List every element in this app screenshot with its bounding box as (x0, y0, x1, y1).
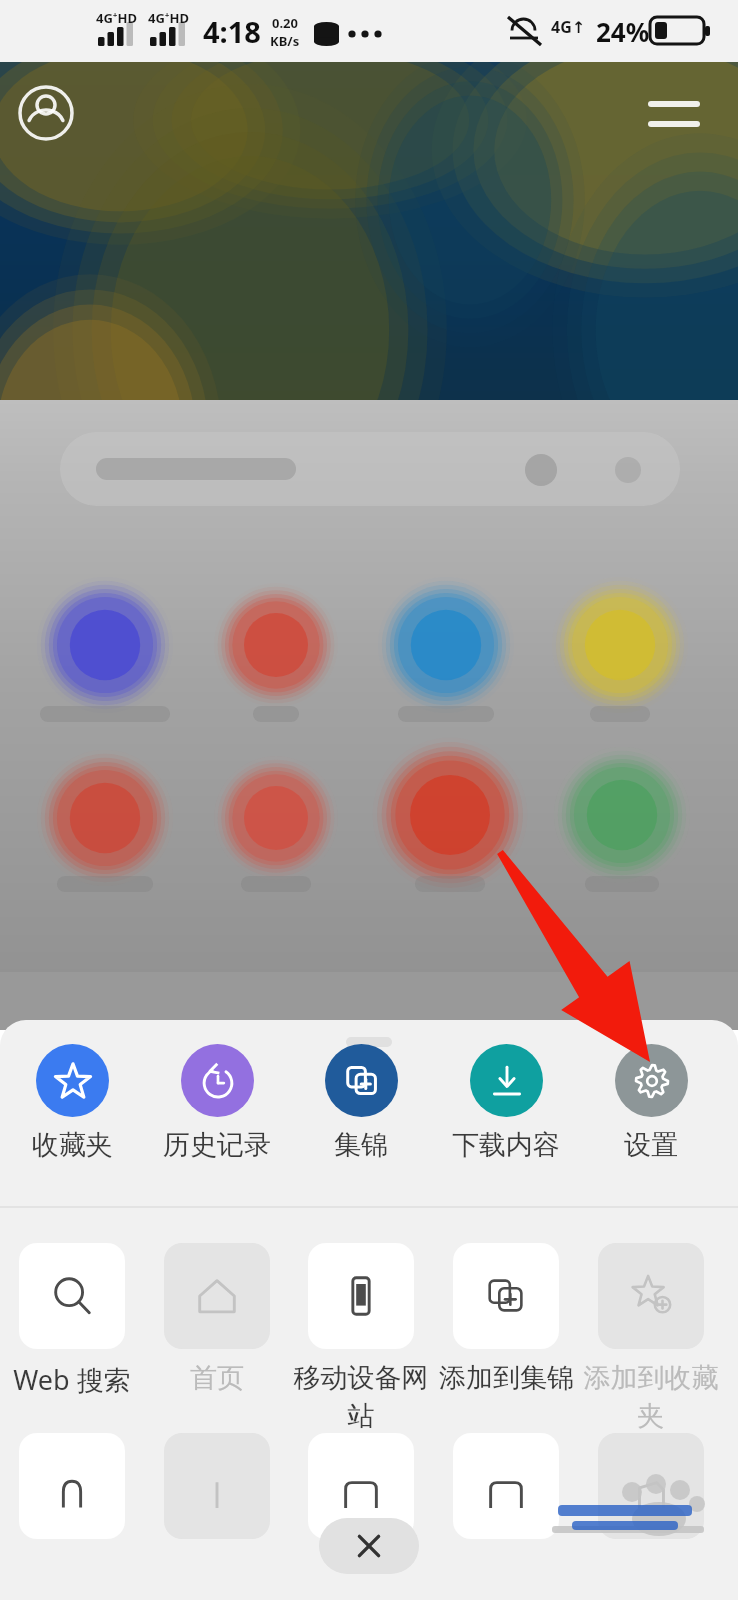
staticText: 首页 (190, 1361, 244, 1395)
button[interactable]: 更多选项 (453, 1433, 559, 1539)
button[interactable]: 首页 (147, 1243, 287, 1395)
staticText: 4:18 (203, 12, 261, 51)
button[interactable]: 下载内容 (438, 1044, 574, 1162)
button[interactable]: 集锦 (293, 1044, 429, 1162)
button[interactable]: 添加到收藏夹 (581, 1243, 721, 1433)
staticText: 0.20 (272, 14, 298, 32)
button[interactable]: 添加到集锦 (436, 1243, 576, 1395)
button[interactable]: 更多选项 (19, 1433, 125, 1539)
button[interactable]: 关闭 (319, 1518, 419, 1574)
staticText: 收藏夹 (32, 1128, 113, 1162)
staticText: 24% (596, 14, 650, 49)
staticText: 4G↑ (551, 16, 586, 38)
button[interactable]: 更多选项 (308, 1433, 414, 1539)
staticText: 移动设备网站 (291, 1361, 431, 1433)
staticText: 4G⁺HD (96, 9, 137, 27)
button[interactable]: 历史记录 (149, 1044, 285, 1162)
staticText: 集锦 (334, 1128, 388, 1162)
button[interactable]: 移动设备网站 (291, 1243, 431, 1433)
staticText: 添加到集锦 (439, 1361, 574, 1395)
staticText: 下载内容 (452, 1128, 560, 1162)
staticText: 4G⁺HD (148, 9, 189, 27)
staticText: 历史记录 (163, 1128, 271, 1162)
button[interactable]: 收藏夹 (4, 1044, 140, 1162)
staticText: 添加到收藏夹 (581, 1361, 721, 1433)
staticText: 设置 (624, 1128, 678, 1162)
button[interactable]: 设置 (583, 1044, 719, 1162)
button[interactable]: 更多选项 (164, 1433, 270, 1539)
button[interactable]: 更多选项 (598, 1433, 704, 1539)
staticText: Web 搜索 (13, 1361, 131, 1398)
button[interactable]: Web 搜索 (2, 1243, 142, 1398)
staticText: KB/s (270, 32, 300, 50)
